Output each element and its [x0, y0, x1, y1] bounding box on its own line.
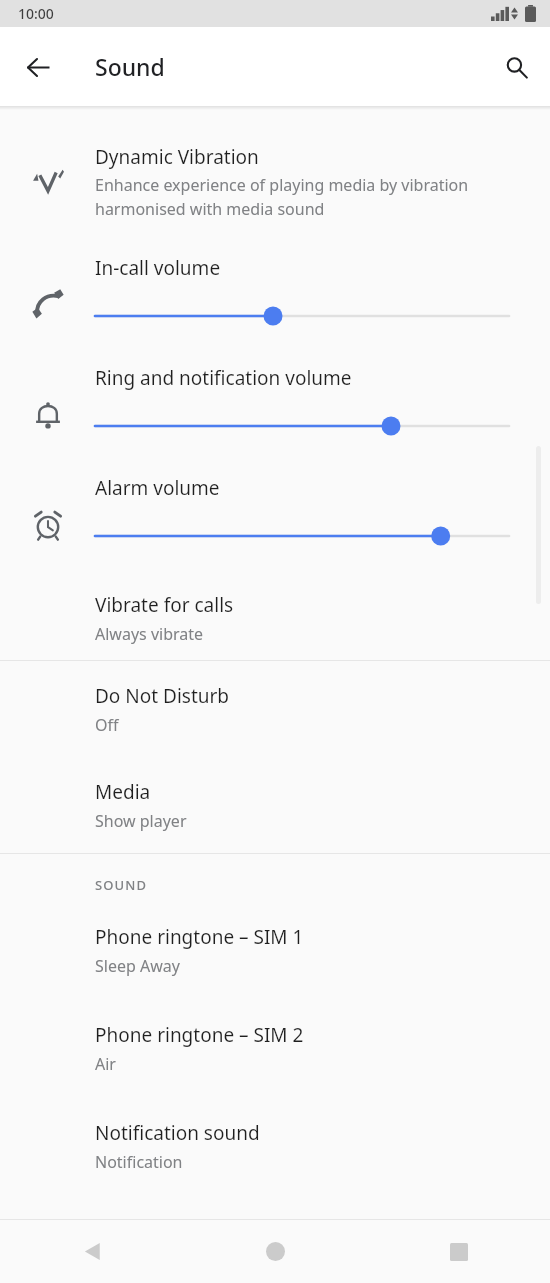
staticText: SOUND [95, 876, 148, 894]
button[interactable]: Phone ringtone – SIM 2 [0, 1012, 550, 1084]
button[interactable]: Phone ringtone – SIM 1 [0, 914, 550, 986]
button[interactable]: Search [490, 41, 542, 93]
staticText: Always vibrate [95, 623, 204, 645]
staticText: Enhance experience of playing media by v… [95, 174, 520, 220]
button[interactable]: Media [0, 769, 550, 841]
staticText: Sound [95, 51, 165, 82]
staticText: Notification [95, 1151, 183, 1173]
staticText: Notification sound [95, 1120, 260, 1146]
staticText: Ring and notification volume [95, 365, 352, 391]
staticText: Phone ringtone – SIM 1 [95, 924, 304, 950]
button[interactable]: Dynamic Vibration [0, 132, 550, 232]
button[interactable]: Ring and notification volume [0, 346, 550, 456]
staticText: Media [95, 779, 151, 805]
button[interactable]: Vibrate for calls [0, 582, 550, 654]
staticText: Alarm volume [95, 475, 220, 501]
staticText: Phone ringtone – SIM 2 [95, 1022, 304, 1048]
button[interactable]: Home [184, 1220, 367, 1283]
staticText: Dynamic Vibration [95, 144, 259, 170]
button[interactable]: Notification sound [0, 1110, 550, 1182]
staticText: Off [95, 714, 119, 736]
staticText: Do Not Disturb [95, 683, 230, 709]
staticText: Sleep Away [95, 955, 180, 977]
button[interactable]: Do Not Disturb [0, 673, 550, 745]
staticText: Air [95, 1053, 116, 1075]
button[interactable]: In-call volume [0, 236, 550, 346]
button[interactable]: Recent apps [367, 1220, 550, 1283]
button[interactable]: Navigate up [12, 41, 64, 93]
staticText: In-call volume [95, 255, 221, 281]
staticText: 10:00 [18, 4, 54, 23]
staticText: Show player [95, 810, 187, 832]
button[interactable]: Alarm volume [0, 456, 550, 566]
button[interactable]: Back [0, 1220, 184, 1283]
staticText: Vibrate for calls [95, 592, 234, 618]
